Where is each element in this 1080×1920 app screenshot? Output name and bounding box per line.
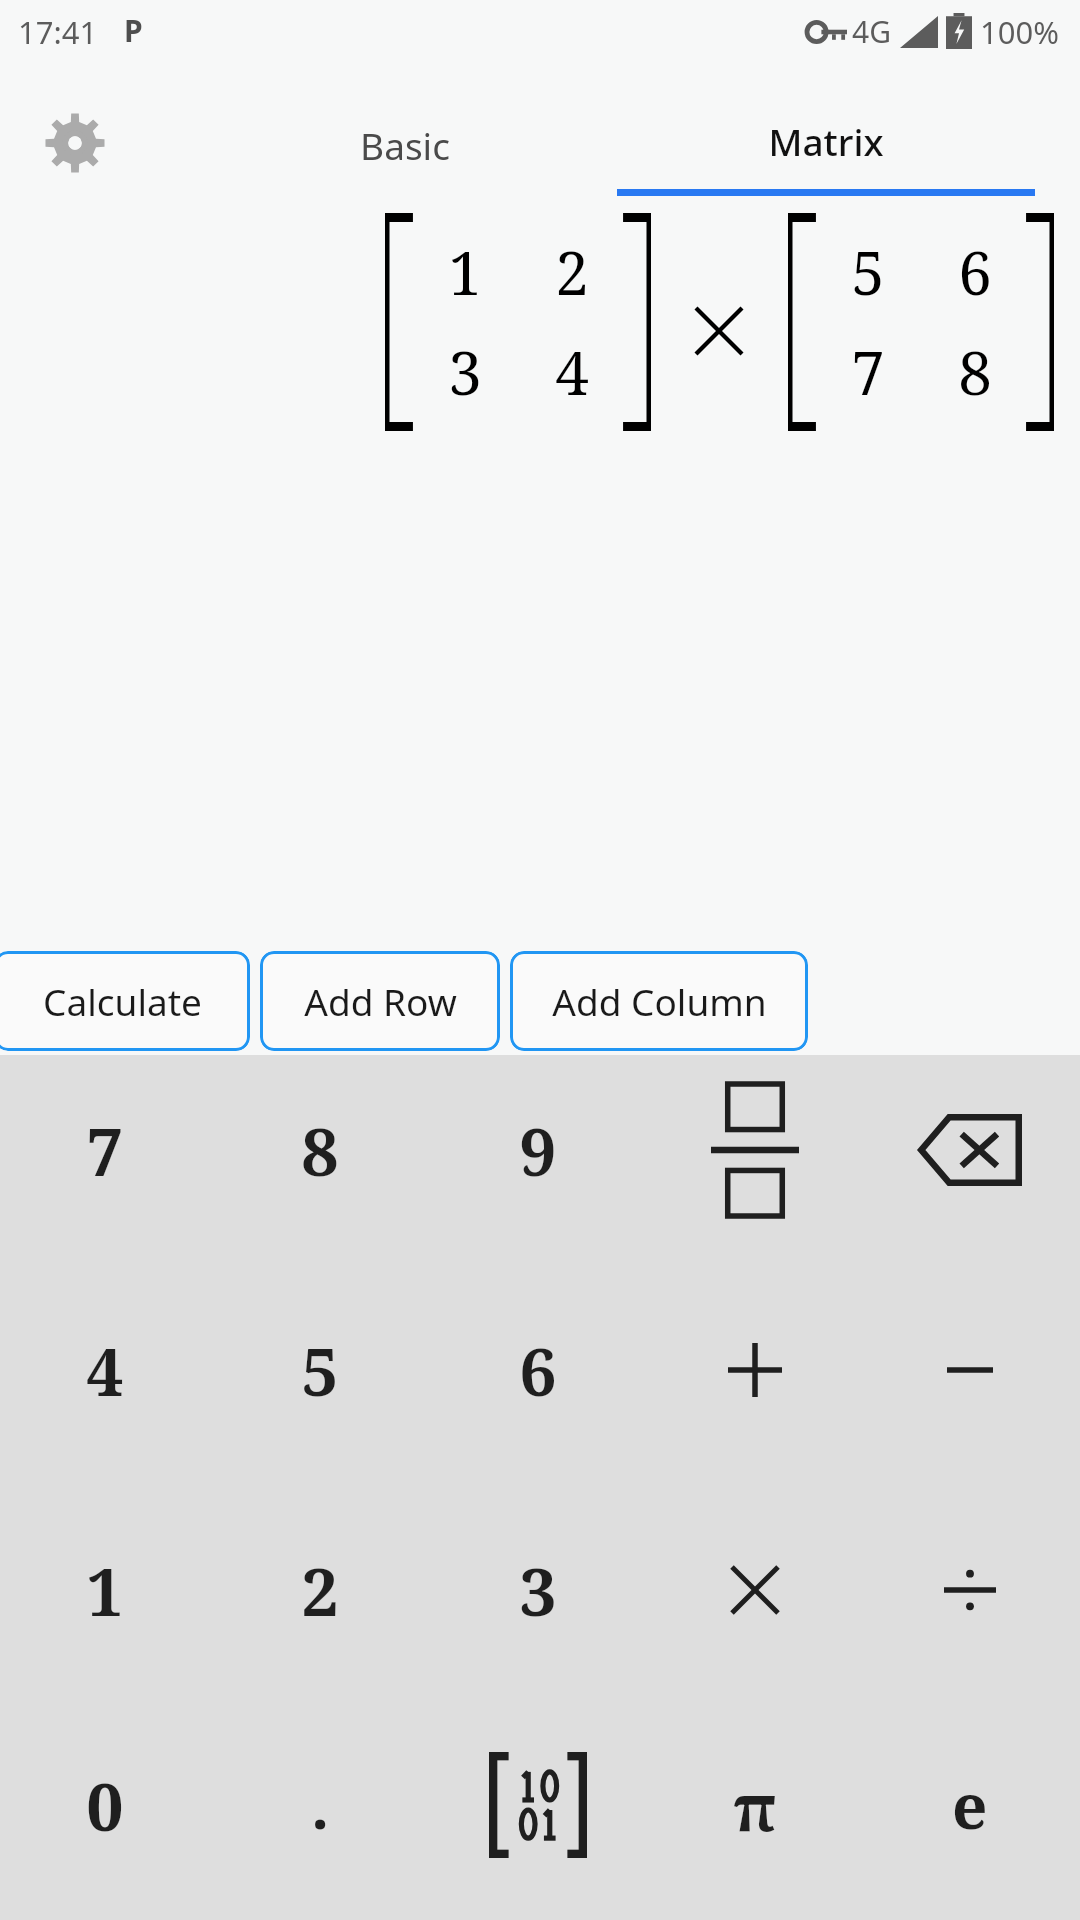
- staticText: 7: [86, 1105, 124, 1195]
- button[interactable]: 4: [0, 1262, 213, 1478]
- staticText: 3: [448, 331, 482, 413]
- staticText: P: [124, 10, 143, 51]
- button[interactable]: [647, 1482, 863, 1698]
- button[interactable]: 0: [0, 1697, 213, 1913]
- button[interactable]: 9: [430, 1042, 646, 1258]
- button[interactable]: e: [862, 1697, 1078, 1913]
- button[interactable]: [647, 1262, 863, 1478]
- staticText: 8: [958, 331, 992, 413]
- staticText: e: [952, 1763, 988, 1847]
- button[interactable]: 2: [212, 1482, 428, 1698]
- button[interactable]: π: [647, 1697, 863, 1913]
- button[interactable]: 8: [212, 1042, 428, 1258]
- staticText: 3: [519, 1545, 557, 1635]
- button[interactable]: Settings: [33, 101, 117, 185]
- staticText: 2: [555, 231, 589, 313]
- staticText: 2: [301, 1545, 339, 1635]
- staticText: 8: [301, 1105, 339, 1195]
- staticText: .: [311, 1763, 330, 1847]
- staticText: π: [733, 1760, 777, 1850]
- staticText: 9: [519, 1105, 557, 1195]
- staticText: Basic: [360, 120, 450, 170]
- button[interactable]: Backspace: [862, 1042, 1078, 1258]
- button[interactable]: Calculate: [0, 951, 250, 1051]
- staticText: 100%: [980, 11, 1059, 53]
- button[interactable]: 6: [430, 1262, 646, 1478]
- button[interactable]: Identity matrix: [430, 1697, 646, 1913]
- staticText: 6: [519, 1325, 557, 1415]
- staticText: 5: [851, 231, 885, 313]
- staticText: 4: [86, 1325, 124, 1415]
- staticText: Matrix: [768, 116, 884, 166]
- button[interactable]: .: [212, 1697, 428, 1913]
- button[interactable]: [862, 1262, 1078, 1478]
- button[interactable]: 5: [212, 1262, 428, 1478]
- button[interactable]: Matrix: [617, 96, 1035, 196]
- button[interactable]: Add Row: [260, 951, 500, 1051]
- staticText: 0: [86, 1760, 124, 1850]
- staticText: Add Row: [304, 976, 457, 1026]
- staticText: 1: [448, 231, 482, 313]
- staticText: 6: [958, 231, 992, 313]
- staticText: 1: [86, 1545, 124, 1635]
- button[interactable]: 7: [0, 1042, 213, 1258]
- staticText: 5: [301, 1325, 339, 1415]
- button[interactable]: 1: [0, 1482, 213, 1698]
- button[interactable]: Fraction: [647, 1042, 863, 1258]
- staticText: 4G: [852, 11, 891, 52]
- button[interactable]: Basic: [215, 96, 595, 194]
- staticText: Calculate: [43, 976, 202, 1026]
- staticText: Add Column: [552, 976, 767, 1026]
- staticText: 17:41: [18, 11, 98, 53]
- button[interactable]: 3: [430, 1482, 646, 1698]
- button[interactable]: [862, 1482, 1078, 1698]
- button[interactable]: Add Column: [510, 951, 808, 1051]
- staticText: 7: [851, 331, 885, 413]
- staticText: 4: [555, 331, 589, 413]
